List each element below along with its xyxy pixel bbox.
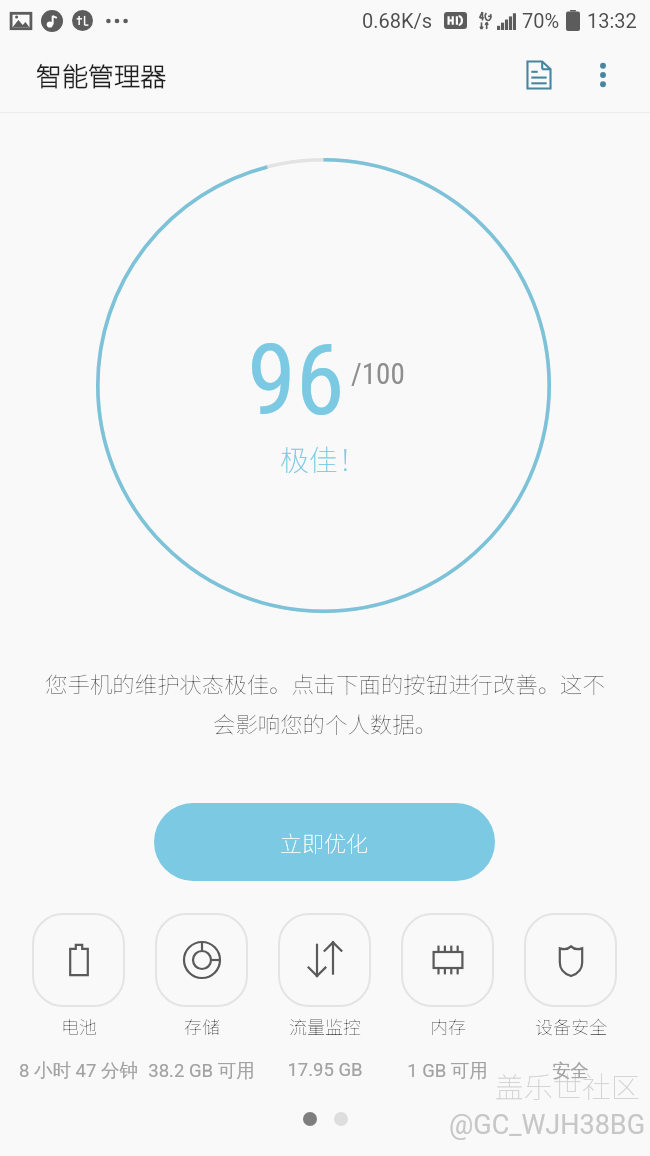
staticText: /100 [351, 357, 405, 391]
staticText: 安全 [552, 1059, 589, 1082]
staticText: @GC_WJH38BG [449, 1109, 646, 1141]
staticText: 8 小时 47 分钟 [19, 1059, 138, 1082]
button[interactable]: 存储 [155, 913, 248, 1039]
staticText: 38.2 GB 可用 [148, 1059, 255, 1082]
button[interactable]: 设备安全 [524, 913, 617, 1039]
button[interactable]: More options [578, 50, 628, 100]
button[interactable]: 立即优化 [154, 803, 495, 881]
button[interactable]: Report [512, 48, 566, 102]
button[interactable]: Page 2 [334, 1112, 348, 1126]
staticText: 极佳！ [280, 437, 368, 479]
staticText: 1 GB 可用 [407, 1059, 488, 1082]
staticText: 96 [247, 322, 345, 438]
button[interactable]: 内存 [401, 913, 494, 1039]
staticText: 内存 [430, 1013, 466, 1039]
staticText: 您手机的维护状态极佳。点击下面的按钮进行改善。这不会影响您的个人数据。 [41, 667, 609, 739]
staticText: 盖乐世社区 [495, 1064, 641, 1106]
button[interactable]: 流量监控 [278, 913, 371, 1039]
staticText: 智能管理器 [36, 56, 167, 94]
staticText: 17.95 GB [287, 1059, 363, 1081]
staticText: 立即优化 [280, 826, 369, 858]
staticText: 存储 [184, 1013, 220, 1039]
staticText: 流量监控 [289, 1013, 361, 1039]
staticText: 电池 [61, 1013, 97, 1039]
staticText: 70% [522, 9, 560, 32]
button[interactable]: Page 1 [303, 1112, 317, 1126]
staticText: 13:32 [587, 9, 637, 32]
staticText: 0.68K/s [362, 9, 433, 32]
staticText: 设备安全 [535, 1013, 607, 1039]
button[interactable]: 电池 [32, 913, 125, 1039]
